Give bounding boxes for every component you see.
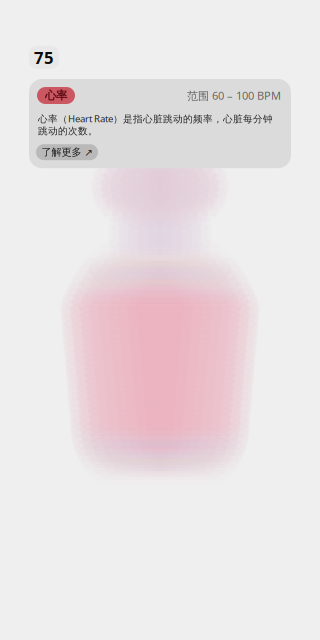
button[interactable]: 了解更多 ↗ <box>36 144 98 160</box>
staticText: 了解更多 ↗ <box>41 146 92 159</box>
button[interactable]: 75 <box>29 46 59 69</box>
staticText: 心率（Heart Rate）是指心脏跳动的频率，心脏每分钟跳动的次数。 <box>38 112 273 137</box>
staticText: 心率 <box>45 88 67 103</box>
staticText: 范围 60 – 100 BPM <box>187 88 281 103</box>
staticText: 75 <box>34 46 54 69</box>
